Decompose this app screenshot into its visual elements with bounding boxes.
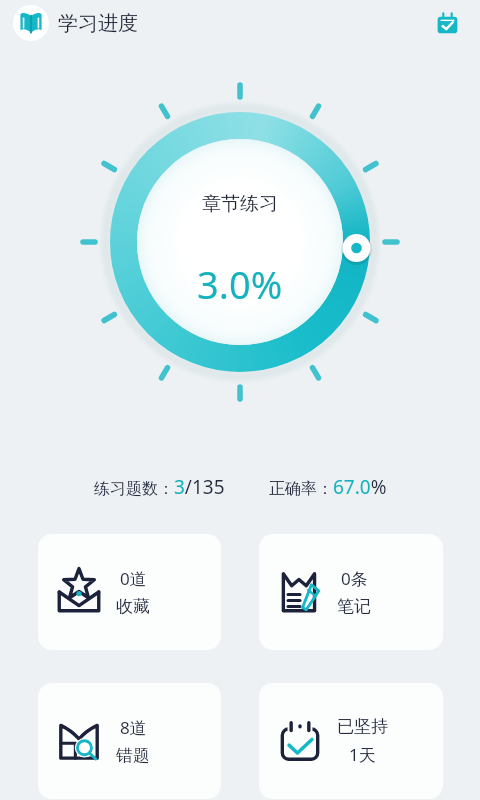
- button[interactable]: Wrong questions: [38, 683, 221, 799]
- staticText: 8道: [120, 716, 147, 739]
- staticText: 练习题数：3/135: [94, 474, 225, 500]
- staticText: 1天: [349, 743, 376, 766]
- staticText: 0道: [120, 567, 147, 590]
- button[interactable]: Calendar: [430, 6, 464, 40]
- button[interactable]: Notes: [259, 534, 443, 650]
- staticText: 已坚持: [337, 716, 388, 737]
- staticText: 3.0%: [197, 258, 283, 310]
- staticText: 章节练习: [202, 192, 278, 216]
- staticText: 0条: [341, 567, 368, 590]
- button[interactable]: Days persisted: [259, 683, 443, 799]
- staticText: 错题: [116, 745, 150, 766]
- button[interactable]: Favorites: [38, 534, 221, 650]
- staticText: 学习进度: [58, 11, 138, 36]
- button[interactable]: Study progress: [13, 5, 49, 41]
- staticText: 收藏: [116, 596, 150, 617]
- staticText: 正确率：67.0%: [269, 474, 387, 500]
- staticText: 笔记: [337, 596, 371, 617]
